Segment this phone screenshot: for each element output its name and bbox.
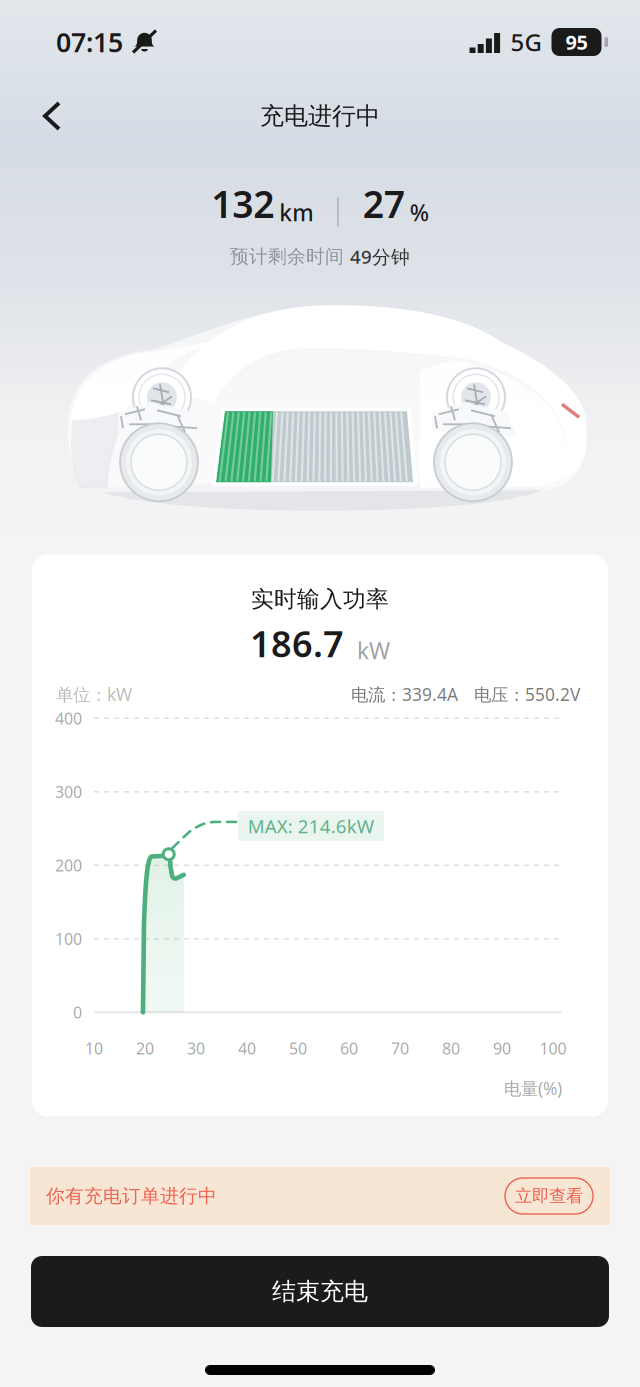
button[interactable]: Back (21, 81, 83, 151)
staticText: 电量(%) (504, 1076, 562, 1100)
staticText: 充电进行中 (260, 101, 380, 131)
staticText: 预计剩余时间 (230, 245, 350, 268)
staticText: 186.7 (250, 619, 344, 668)
staticText: kW (357, 635, 390, 666)
staticText: 27 (363, 178, 405, 229)
staticText: 70 (391, 1037, 409, 1059)
staticText: 10 (85, 1037, 103, 1059)
staticText: 30 (187, 1037, 205, 1059)
staticText: 50 (289, 1037, 307, 1059)
staticText: 200 (55, 854, 82, 876)
button[interactable]: 立即查看 (505, 1178, 593, 1214)
button[interactable]: 结束充电 (31, 1256, 609, 1327)
staticText: 49分钟 (350, 244, 410, 269)
staticText: 40 (238, 1037, 256, 1059)
staticText: 100 (539, 1037, 566, 1059)
staticText: 300 (55, 781, 82, 803)
staticText: % (410, 197, 429, 228)
staticText: MAX: 214.6kW (248, 813, 374, 839)
staticText: 100 (55, 928, 82, 950)
staticText: 90 (493, 1037, 511, 1059)
staticText: 20 (136, 1037, 154, 1059)
staticText: km (279, 197, 313, 228)
staticText: 07:15 (56, 24, 123, 60)
staticText: 电流：339.4A (351, 682, 458, 706)
staticText: 立即查看 (515, 1185, 583, 1207)
staticText: 实时输入功率 (251, 585, 389, 614)
staticText: 400 (55, 707, 82, 729)
staticText: 0 (73, 1001, 82, 1023)
staticText: 你有充电订单进行中 (46, 1184, 217, 1208)
staticText: 单位：kW (56, 682, 132, 706)
staticText: 60 (340, 1037, 358, 1059)
staticText: 95 (565, 28, 587, 56)
staticText: 电压：550.2V (474, 682, 580, 706)
staticText: 80 (442, 1037, 460, 1059)
staticText: 5G (510, 26, 541, 58)
staticText: 132 (211, 178, 274, 229)
staticText: 结束充电 (272, 1276, 368, 1307)
